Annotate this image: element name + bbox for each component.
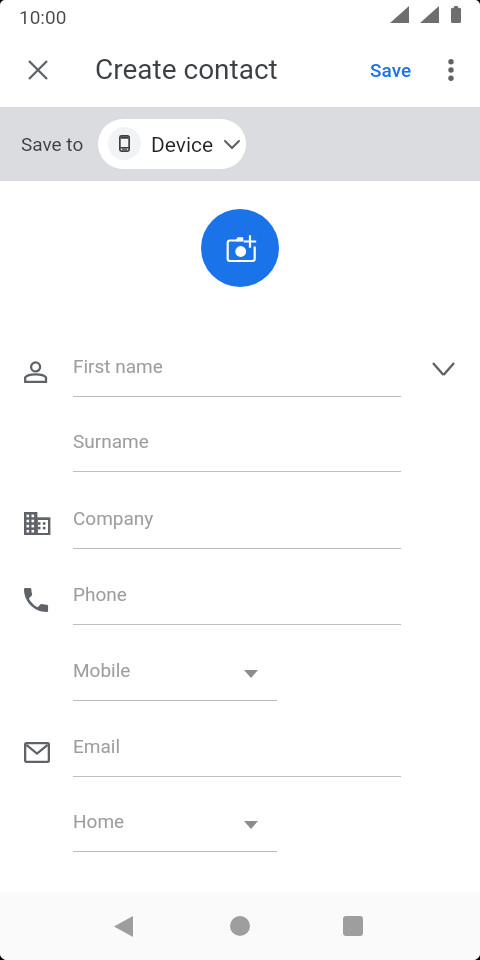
- button[interactable]: Home: [213, 899, 267, 953]
- staticText: Save to: [21, 133, 84, 155]
- button[interactable]: Mobile: [0, 644, 480, 718]
- button[interactable]: Company: [0, 492, 480, 566]
- button[interactable]: Close: [18, 50, 58, 90]
- staticText: Save: [370, 59, 412, 81]
- button[interactable]: Surname: [0, 415, 480, 489]
- staticText: 10:00: [19, 6, 67, 28]
- button[interactable]: Device: [98, 119, 246, 169]
- staticText: Mobile: [73, 659, 131, 681]
- button[interactable]: First name: [0, 340, 480, 414]
- button[interactable]: Add photo: [201, 209, 279, 287]
- button[interactable]: More options: [431, 50, 471, 90]
- button[interactable]: Home: [0, 795, 480, 869]
- button[interactable]: Expand name fields: [423, 349, 463, 389]
- staticText: Device: [151, 133, 214, 158]
- button[interactable]: Recent apps: [326, 899, 380, 953]
- button[interactable]: Phone: [0, 568, 480, 642]
- staticText: Company: [73, 507, 154, 529]
- button[interactable]: Back: [96, 899, 150, 953]
- staticText: Create contact: [95, 53, 278, 86]
- staticText: Home: [73, 810, 125, 832]
- button[interactable]: Email: [0, 720, 480, 794]
- staticText: Email: [73, 735, 121, 757]
- button[interactable]: Save: [360, 50, 422, 90]
- staticText: First name: [73, 355, 163, 377]
- staticText: Surname: [73, 430, 149, 452]
- staticText: Phone: [73, 583, 127, 605]
